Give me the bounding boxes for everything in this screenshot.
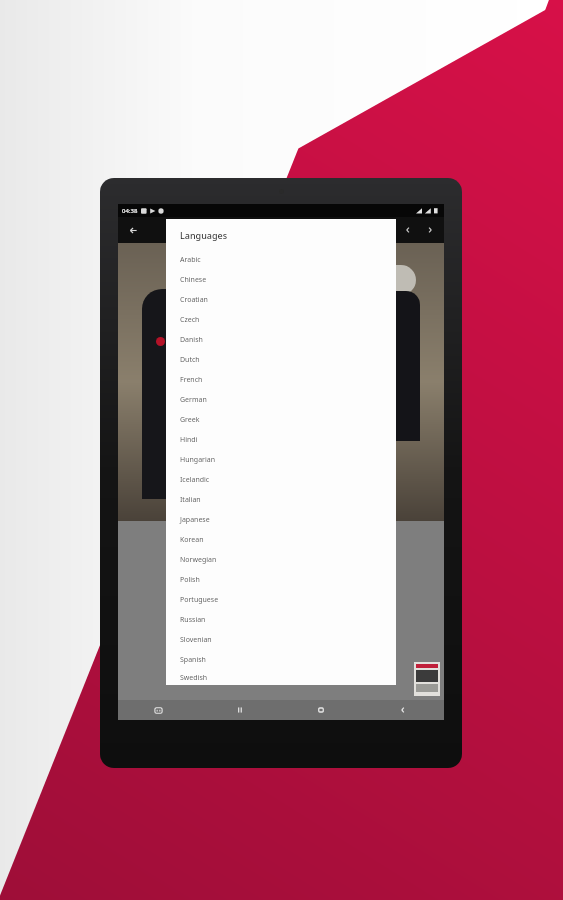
staticText: Japanese	[180, 515, 210, 525]
staticText: Croatian	[180, 295, 208, 305]
button[interactable]: Italian	[166, 490, 396, 510]
staticText: German	[180, 395, 207, 405]
button[interactable]: Next	[422, 222, 438, 238]
button[interactable]: Slovenian	[166, 630, 396, 650]
staticText: Languages	[180, 229, 228, 241]
staticText: Czech	[180, 315, 200, 325]
staticText: Hungarian	[180, 455, 216, 465]
button[interactable]: Back	[362, 700, 444, 720]
staticText: Norwegian	[180, 555, 217, 565]
button[interactable]: Spanish	[166, 650, 396, 670]
button[interactable]: Home	[280, 700, 362, 720]
staticText: 04:38	[122, 207, 138, 215]
staticText: Arabic	[180, 255, 201, 265]
button[interactable]: Polish	[166, 570, 396, 590]
staticText: Greek	[180, 415, 200, 425]
button[interactable]: German	[166, 390, 396, 410]
staticText: Polish	[180, 575, 200, 585]
button[interactable]	[414, 662, 440, 696]
staticText: Italian	[180, 495, 201, 505]
button[interactable]: Czech	[166, 310, 396, 330]
button[interactable]: Back	[124, 221, 142, 239]
button[interactable]: Korean	[166, 530, 396, 550]
staticText: Icelandic	[180, 475, 210, 485]
button[interactable]: Norwegian	[166, 550, 396, 570]
staticText: Portuguese	[180, 595, 219, 605]
staticText: Slovenian	[180, 635, 212, 645]
button[interactable]: Greek	[166, 410, 396, 430]
staticText: Russian	[180, 615, 206, 625]
button[interactable]: Hungarian	[166, 450, 396, 470]
staticText: Danish	[180, 335, 203, 345]
button[interactable]: Arabic	[166, 250, 396, 270]
button[interactable]: Pause	[199, 700, 280, 720]
button[interactable]: Danish	[166, 330, 396, 350]
button[interactable]: Swedish	[166, 670, 396, 685]
button[interactable]: French	[166, 370, 396, 390]
staticText: Chinese	[180, 275, 207, 285]
button[interactable]: Portuguese	[166, 590, 396, 610]
staticText: Spanish	[180, 655, 206, 665]
staticText: Swedish	[180, 673, 208, 683]
button[interactable]: Dutch	[166, 350, 396, 370]
staticText: Dutch	[180, 355, 200, 365]
button[interactable]: Russian	[166, 610, 396, 630]
staticText: Korean	[180, 535, 204, 545]
button[interactable]: Keyboard	[118, 700, 199, 720]
staticText: French	[180, 375, 203, 385]
button[interactable]: Chinese	[166, 270, 396, 290]
button[interactable]: Icelandic	[166, 470, 396, 490]
staticText: Hindi	[180, 435, 198, 445]
button[interactable]: Croatian	[166, 290, 396, 310]
button[interactable]: Hindi	[166, 430, 396, 450]
button[interactable]: Japanese	[166, 510, 396, 530]
button[interactable]: Previous	[400, 222, 416, 238]
